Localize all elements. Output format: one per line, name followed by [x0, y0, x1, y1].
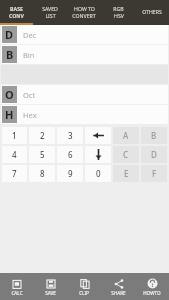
button[interactable]: 6 — [57, 146, 83, 163]
staticText: 5 — [40, 149, 45, 160]
staticText: E — [124, 168, 129, 179]
staticText: F — [152, 168, 157, 179]
button[interactable]: 8 — [29, 165, 55, 182]
button[interactable]: 3 — [57, 127, 83, 144]
button[interactable]: C — [113, 146, 139, 163]
button[interactable]: Backspace — [85, 127, 111, 144]
staticText: LIST — [45, 12, 56, 19]
staticText: HOW TO — [74, 5, 95, 12]
button[interactable]: D — [141, 146, 167, 163]
staticText: 6 — [68, 149, 73, 160]
button[interactable]: B — [1, 45, 168, 64]
staticText: B — [151, 130, 157, 141]
button[interactable]: F — [141, 165, 167, 182]
button[interactable]: OTHERS — [135, 0, 169, 25]
staticText: SHARE — [111, 290, 126, 296]
button[interactable]: CALC — [0, 273, 33, 300]
staticText: A — [123, 130, 129, 141]
button[interactable]: CLIP — [67, 273, 101, 300]
staticText: D — [151, 149, 157, 160]
staticText: 4 — [12, 149, 17, 160]
button[interactable]: 4 — [2, 146, 27, 163]
staticText: 7 — [12, 168, 17, 179]
staticText: B — [6, 47, 14, 62]
staticText: Oct — [23, 90, 36, 100]
staticText: Bin — [23, 50, 35, 60]
staticText: Dec — [23, 30, 37, 40]
staticText: SAVED — [42, 5, 58, 12]
button[interactable]: 5 — [29, 146, 55, 163]
staticText: HOWTO — [143, 290, 161, 296]
button[interactable]: E — [113, 165, 139, 182]
button[interactable]: HOWTO — [135, 273, 169, 300]
staticText: BASE — [10, 5, 23, 12]
staticText: D — [5, 27, 14, 42]
button[interactable]: B — [141, 127, 167, 144]
staticText: 0 — [96, 168, 101, 179]
button[interactable]: 1 — [2, 127, 27, 144]
staticText: OTHERS — [142, 8, 162, 15]
staticText: CONVERT — [72, 12, 96, 19]
staticText: CALC — [11, 290, 23, 296]
staticText: RGB — [113, 5, 124, 12]
button[interactable]: SAVE — [33, 273, 67, 300]
staticText: H — [5, 107, 14, 122]
button[interactable]: HOW TO — [67, 0, 101, 25]
button[interactable]: SAVED — [33, 0, 67, 25]
button[interactable]: 0 — [85, 165, 111, 182]
staticText: SAVE — [45, 290, 56, 296]
button[interactable]: A — [113, 127, 139, 144]
button[interactable]: RGB — [101, 0, 135, 25]
button[interactable]: 7 — [2, 165, 27, 182]
button[interactable]: BASE — [0, 0, 33, 25]
staticText: 2 — [40, 130, 45, 141]
button[interactable]: SHARE — [101, 273, 135, 300]
button[interactable]: D — [1, 25, 168, 44]
staticText: CLIP — [79, 290, 89, 296]
staticText: CONV — [9, 12, 24, 19]
staticText: 1 — [12, 130, 17, 141]
staticText: 3 — [68, 130, 73, 141]
button[interactable]: 9 — [57, 165, 83, 182]
staticText: Hex — [23, 110, 37, 120]
button[interactable]: 2 — [29, 127, 55, 144]
staticText: 8 — [40, 168, 45, 179]
staticText: 9 — [68, 168, 73, 179]
staticText: C — [123, 149, 129, 160]
button[interactable]: O — [1, 85, 168, 104]
button[interactable]: Enter — [85, 146, 111, 163]
staticText: O — [5, 87, 14, 102]
button[interactable]: H — [1, 105, 168, 124]
staticText: HSV — [114, 12, 124, 19]
